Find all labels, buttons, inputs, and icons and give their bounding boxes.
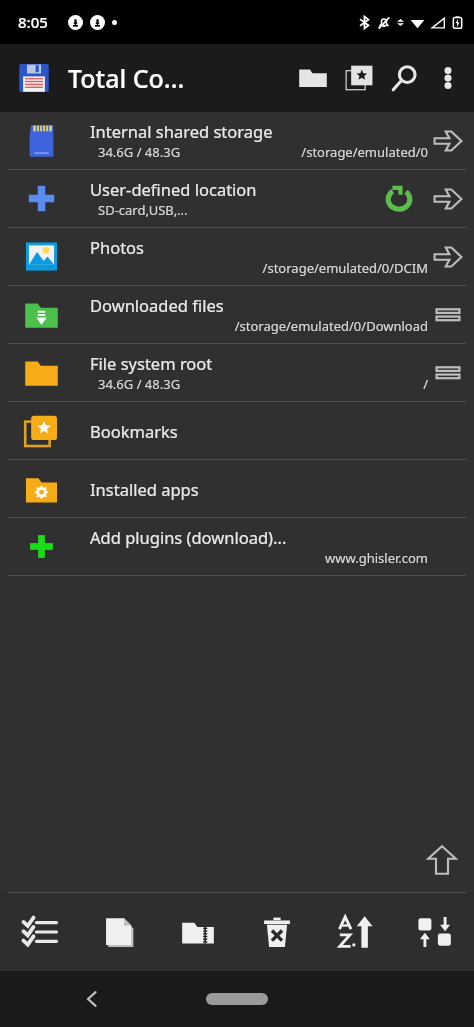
button[interactable]: Open in new tab <box>428 121 468 161</box>
button[interactable]: File system root <box>0 344 474 402</box>
button[interactable]: Open in new tab <box>428 237 468 277</box>
button[interactable]: Installed apps <box>0 460 474 518</box>
button[interactable]: Menu <box>428 353 468 393</box>
button[interactable]: Bookmarks <box>0 402 474 460</box>
button[interactable]: New file <box>79 893 158 971</box>
staticText: /storage/emulated/0/DCIM <box>262 259 428 277</box>
staticText: 8:05 <box>18 12 48 32</box>
button[interactable]: User-defined location <box>0 170 474 228</box>
button[interactable]: Home <box>206 993 268 1005</box>
button[interactable]: Internal shared storage <box>0 112 474 170</box>
button[interactable]: Zip <box>158 893 237 971</box>
staticText: Installed apps <box>90 478 199 500</box>
button[interactable]: Scroll to top <box>420 838 464 882</box>
staticText: /storage/emulated/0/Download <box>234 317 428 335</box>
staticText: 34.6G / 48.3G <box>98 375 181 393</box>
staticText: Total Co... <box>68 61 185 95</box>
button[interactable]: More options <box>428 58 468 98</box>
staticText: / <box>423 375 428 393</box>
button[interactable]: Menu <box>428 295 468 335</box>
staticText: Add plugins (download)... <box>90 526 287 548</box>
button[interactable]: Exchange <box>395 893 474 971</box>
button[interactable]: Add plugins (download)... <box>0 518 474 576</box>
staticText: /storage/emulated/0 <box>301 143 428 161</box>
button[interactable]: Refresh <box>382 182 416 216</box>
button[interactable]: Delete <box>237 893 316 971</box>
button[interactable]: Select <box>0 893 79 971</box>
button[interactable]: Back <box>72 979 112 1019</box>
staticText: 34.6G / 48.3G <box>98 143 181 161</box>
staticText: User-defined location <box>90 178 257 200</box>
button[interactable]: Folder <box>290 55 336 101</box>
button[interactable]: Bookmarks <box>336 55 382 101</box>
button[interactable]: Photos <box>0 228 474 286</box>
staticText: Bookmarks <box>90 420 178 442</box>
button[interactable]: Total Commander <box>14 58 54 98</box>
button[interactable]: Search <box>382 55 428 101</box>
staticText: Downloaded files <box>90 294 224 316</box>
staticText: File system root <box>90 352 213 374</box>
button[interactable]: Sort <box>316 893 395 971</box>
button[interactable]: Downloaded files <box>0 286 474 344</box>
staticText: Photos <box>90 236 145 258</box>
staticText: Internal shared storage <box>90 120 273 142</box>
button[interactable]: Open in new tab <box>428 179 468 219</box>
staticText: SD-card,USB,... <box>98 201 188 219</box>
staticText: www.ghisler.com <box>325 549 428 567</box>
